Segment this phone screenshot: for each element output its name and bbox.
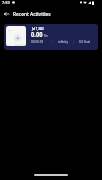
- staticText: 7:59: [2, 0, 10, 5]
- button[interactable]: Back: [1, 9, 11, 19]
- staticText: 0.0 Kcal: [79, 40, 90, 44]
- staticText: Recent Activities: [13, 11, 51, 18]
- staticText: 00:00:18: [31, 40, 43, 44]
- staticText: Km: [44, 33, 48, 38]
- staticText: infinity: [58, 40, 68, 44]
- staticText: 0.00: [31, 29, 43, 39]
- button[interactable]: Jul 7, 2023: [4, 24, 98, 50]
- staticText: Jul 7, 2023: [32, 26, 44, 30]
